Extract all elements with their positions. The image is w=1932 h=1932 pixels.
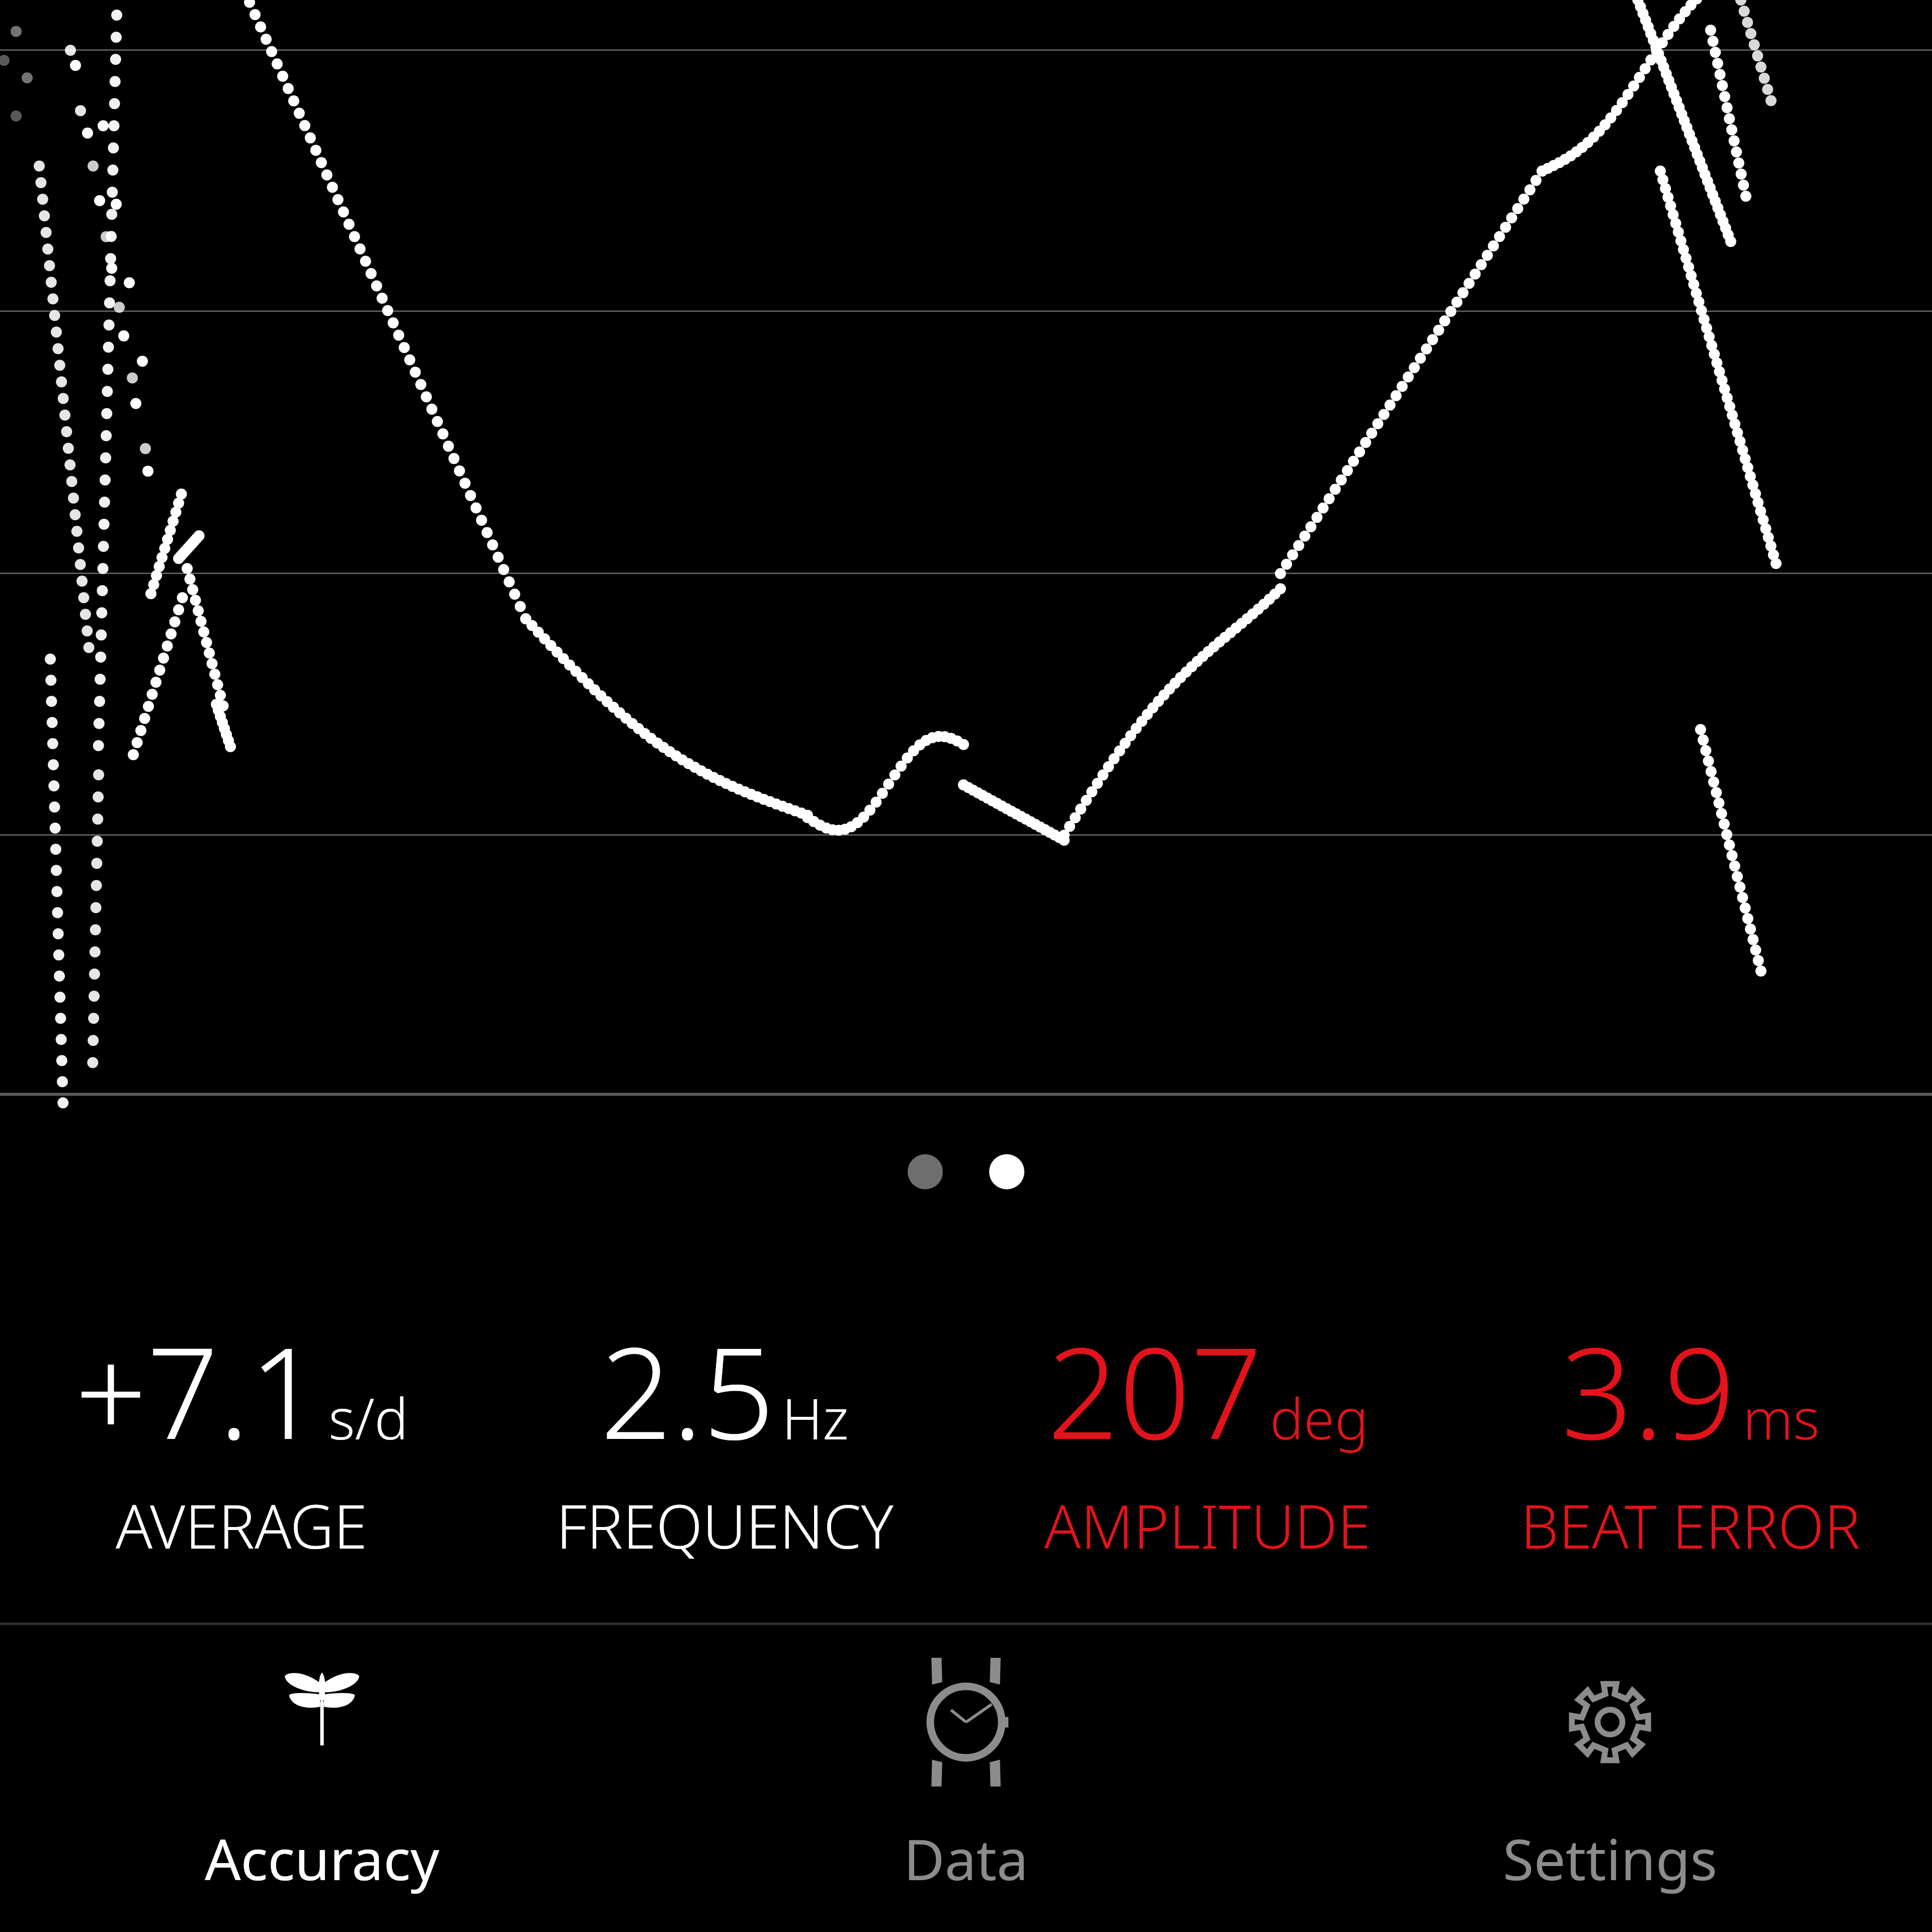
staticText: 2.5 xyxy=(600,1305,775,1476)
staticText: BEAT ERROR xyxy=(1520,1484,1861,1566)
button[interactable]: 207 xyxy=(966,1248,1449,1623)
button[interactable]: 3.9 xyxy=(1449,1248,1932,1623)
staticText: 207 xyxy=(1047,1305,1263,1476)
button[interactable]: Settings xyxy=(1288,1625,1932,1932)
staticText: Accuracy xyxy=(205,1820,440,1897)
staticText: deg xyxy=(1270,1379,1369,1456)
staticText: Data xyxy=(904,1820,1028,1897)
staticText: AMPLITUDE xyxy=(1044,1484,1371,1566)
staticText: AVERAGE xyxy=(116,1484,367,1566)
button[interactable]: Data xyxy=(644,1625,1288,1932)
staticText: ms xyxy=(1743,1379,1820,1456)
button[interactable]: Accuracy xyxy=(0,1625,644,1932)
staticText: +7.1 xyxy=(75,1305,321,1476)
staticText: Settings xyxy=(1503,1820,1718,1897)
staticText: 3.9 xyxy=(1561,1305,1736,1476)
staticText: Hz xyxy=(782,1379,849,1456)
button[interactable]: 2.5 xyxy=(483,1248,966,1623)
staticText: FREQUENCY xyxy=(556,1484,894,1566)
button[interactable]: +7.1 xyxy=(0,1248,483,1623)
staticText: s/d xyxy=(329,1379,409,1456)
